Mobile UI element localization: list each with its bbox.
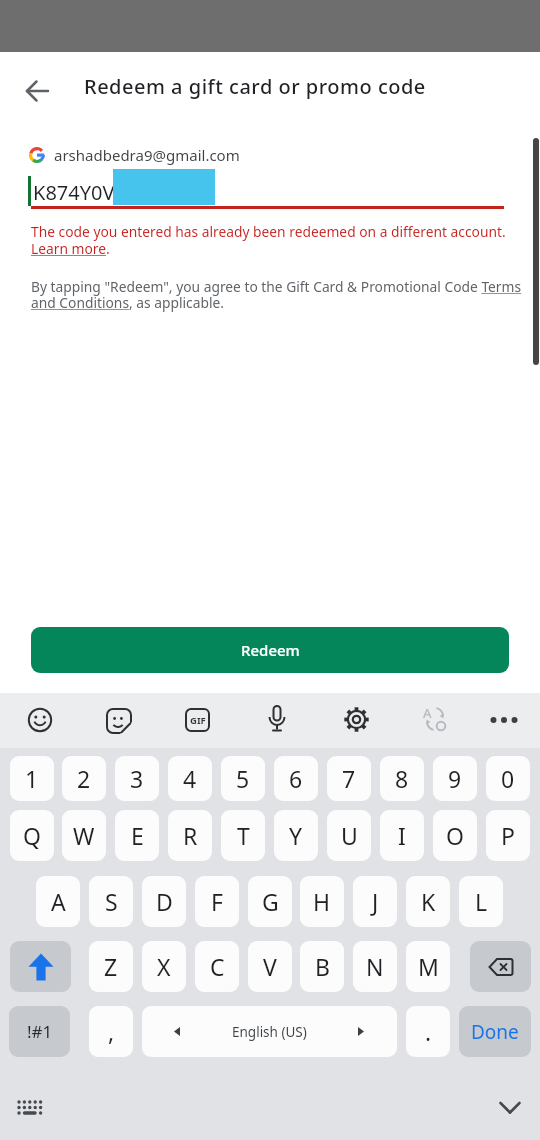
staticText: K874Y0V8	[33, 179, 126, 206]
button[interactable]: M	[406, 941, 450, 992]
staticText: and Conditions, as applicable.	[31, 293, 224, 312]
staticText: By tapping "Redeem", you agree to the Gi…	[31, 277, 522, 296]
staticText: 9	[448, 763, 462, 794]
staticText: B	[315, 951, 330, 982]
button[interactable]: 9	[433, 756, 477, 801]
staticText: X	[157, 951, 171, 982]
staticText: F	[211, 886, 223, 917]
staticText: H	[313, 886, 331, 917]
button[interactable]: Y	[274, 810, 318, 861]
staticText: arshadbedra9@gmail.com	[54, 145, 240, 165]
button[interactable]: .	[406, 1006, 450, 1057]
button[interactable]: 5	[221, 756, 265, 801]
button[interactable]: I	[380, 810, 424, 861]
button[interactable]: GIF	[185, 708, 210, 732]
button[interactable]: F	[195, 876, 239, 927]
button[interactable]: O	[433, 810, 477, 861]
button[interactable]: G	[248, 876, 292, 927]
staticText: W	[73, 820, 95, 851]
button[interactable]: N	[353, 941, 397, 992]
button[interactable]	[24, 78, 50, 104]
staticText: E	[131, 820, 144, 851]
button[interactable]: 4	[168, 756, 212, 801]
button[interactable]: J	[353, 876, 397, 927]
staticText: 8	[395, 763, 409, 794]
button[interactable]	[470, 941, 531, 992]
staticText: V	[263, 951, 277, 982]
button[interactable]	[487, 713, 521, 727]
button[interactable]: D	[142, 876, 186, 927]
button[interactable]	[10, 941, 71, 992]
staticText: ,	[108, 1016, 115, 1047]
button[interactable]: 0	[486, 756, 530, 801]
staticText: English (US)	[232, 1023, 307, 1041]
staticText: The code you entered has already been re…	[31, 222, 506, 241]
button[interactable]: U	[327, 810, 371, 861]
button[interactable]: W	[62, 810, 106, 861]
staticText: N	[366, 951, 384, 982]
button[interactable]: K	[406, 876, 450, 927]
button[interactable]: B	[300, 941, 344, 992]
button[interactable]: P	[486, 810, 530, 861]
button[interactable]: 3	[115, 756, 159, 801]
staticText: P	[501, 820, 515, 851]
button[interactable]	[15, 1094, 43, 1120]
button[interactable]: ,	[89, 1006, 133, 1057]
staticText: L	[475, 886, 488, 917]
button[interactable]	[498, 1100, 522, 1116]
staticText: 5	[236, 763, 250, 794]
staticText: U	[341, 820, 358, 851]
button[interactable]	[343, 706, 370, 733]
button[interactable]: R	[168, 810, 212, 861]
staticText: J	[372, 886, 379, 917]
staticText: I	[398, 820, 406, 851]
staticText: Z	[104, 951, 118, 982]
button[interactable]: Z	[89, 941, 133, 992]
button[interactable]: 6	[274, 756, 318, 801]
button[interactable]: 8	[380, 756, 424, 801]
staticText: Done	[471, 1019, 519, 1045]
button[interactable]: 7	[327, 756, 371, 801]
button[interactable]: 1	[10, 756, 54, 801]
staticText: 6	[289, 763, 303, 794]
button[interactable]: 2	[62, 756, 106, 801]
staticText: !#1	[27, 1020, 53, 1043]
staticText: 2	[77, 763, 91, 794]
button[interactable]: English (US)	[142, 1006, 397, 1057]
button[interactable]	[265, 704, 289, 734]
staticText: M	[418, 951, 439, 982]
button[interactable]: A	[36, 876, 80, 927]
button[interactable]	[27, 707, 53, 733]
button[interactable]: C	[195, 941, 239, 992]
button[interactable]: Done	[459, 1006, 531, 1057]
staticText: 7	[342, 763, 356, 794]
staticText: R	[183, 820, 198, 851]
staticText: G	[262, 886, 279, 917]
staticText: GIF	[190, 714, 206, 727]
button[interactable]: S	[89, 876, 133, 927]
staticText: D	[156, 886, 173, 917]
button[interactable]: E	[115, 810, 159, 861]
staticText: 3	[130, 763, 144, 794]
staticText: 1	[25, 763, 39, 794]
staticText: Q	[23, 820, 41, 851]
button[interactable]: !#1	[9, 1006, 70, 1057]
staticText: T	[237, 820, 250, 851]
button[interactable]: H	[300, 876, 344, 927]
button[interactable]	[106, 708, 132, 734]
button[interactable]: T	[221, 810, 265, 861]
staticText: 4	[183, 763, 197, 794]
staticText: K	[421, 886, 436, 917]
button[interactable]: Redeem	[31, 627, 509, 673]
button[interactable]: X	[142, 941, 186, 992]
staticText: .	[425, 1016, 432, 1047]
staticText: A	[423, 704, 432, 722]
staticText: Redeem a gift card or promo code	[84, 73, 426, 100]
staticText: Y	[289, 820, 303, 851]
button[interactable]: Learn more.	[31, 239, 110, 258]
button[interactable]: L	[459, 876, 503, 927]
staticText: S	[105, 886, 118, 917]
staticText: C	[210, 951, 225, 982]
button[interactable]: V	[248, 941, 292, 992]
button[interactable]: Q	[10, 810, 54, 861]
